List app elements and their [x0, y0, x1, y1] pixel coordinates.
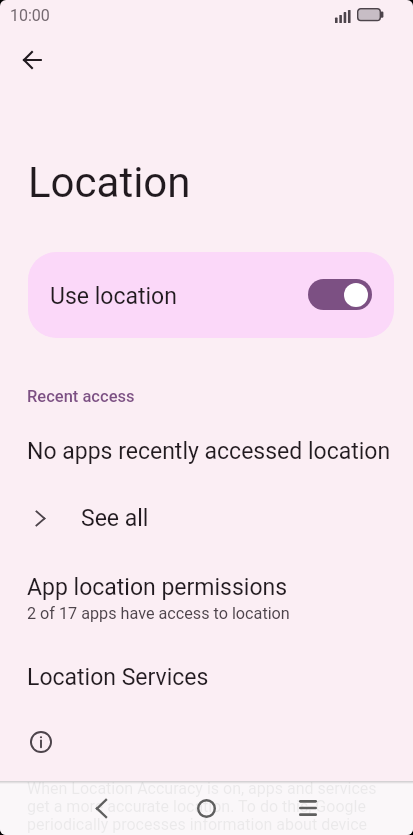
staticText: When Location Accuracy is on, apps and s…: [27, 779, 397, 834]
staticText: App location permissions: [27, 574, 288, 601]
staticText: Recent access: [27, 387, 135, 406]
button[interactable]: Home: [184, 786, 228, 830]
staticText: Use location: [50, 283, 177, 310]
button[interactable]: See all: [0, 495, 413, 541]
button[interactable]: Location Services: [0, 658, 413, 700]
staticText: See all: [81, 505, 149, 532]
button[interactable]: Back: [10, 38, 54, 82]
staticText: No apps recently accessed location: [27, 438, 391, 465]
staticText: Location Services: [27, 664, 209, 691]
button[interactable]: Info: [20, 721, 62, 763]
button[interactable]: Recent apps: [286, 786, 330, 830]
button[interactable]: Back: [79, 786, 123, 830]
button[interactable]: Use location: [28, 252, 394, 338]
staticText: 10:00: [10, 6, 50, 25]
staticText: 2 of 17 apps have access to location: [27, 604, 290, 623]
staticText: Location: [28, 158, 191, 207]
button[interactable]: App location permissions: [0, 568, 413, 630]
